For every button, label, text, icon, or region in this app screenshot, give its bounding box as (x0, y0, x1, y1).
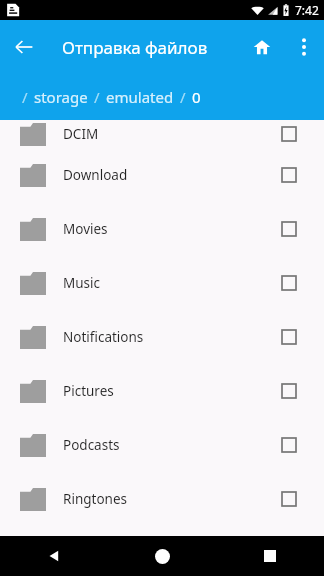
staticText: 7:42 (295, 2, 319, 18)
staticText: DCIM (63, 125, 99, 143)
staticText: Music (63, 274, 101, 292)
staticText: Pictures (63, 382, 114, 400)
staticText: Отправка файлов (62, 36, 208, 59)
button[interactable]: emulated (106, 87, 174, 107)
button[interactable]: Select folder (274, 322, 304, 352)
staticText: emulated (106, 87, 174, 107)
staticText: Notifications (63, 328, 144, 346)
button[interactable]: Home (108, 536, 216, 576)
button[interactable]: Back (0, 23, 48, 71)
staticText: 0 (192, 87, 201, 107)
button[interactable]: Ringtones (0, 472, 324, 526)
button[interactable]: Notifications (0, 310, 324, 364)
staticText: / (94, 87, 100, 107)
button[interactable]: Music (0, 256, 324, 310)
button[interactable]: Pictures (0, 364, 324, 418)
button[interactable]: DCIM (0, 120, 324, 148)
button[interactable]: Recent apps (216, 536, 324, 576)
staticText: Download (63, 166, 128, 184)
staticText: / (22, 87, 28, 107)
button[interactable]: Back (0, 536, 108, 576)
button[interactable]: 0 (192, 87, 201, 107)
button[interactable]: Select folder (274, 160, 304, 190)
staticText: Ringtones (63, 490, 127, 508)
staticText: Movies (63, 220, 108, 238)
button[interactable]: Select folder (274, 214, 304, 244)
button[interactable]: Download (0, 148, 324, 202)
button[interactable]: Home (240, 25, 284, 69)
staticText: / (180, 87, 186, 107)
button[interactable]: Podcasts (0, 418, 324, 472)
button[interactable]: Select folder (274, 484, 304, 514)
button[interactable]: Movies (0, 202, 324, 256)
button[interactable]: Select folder (274, 430, 304, 460)
staticText: storage (34, 87, 88, 107)
staticText: Podcasts (63, 436, 120, 454)
button[interactable]: storage (34, 87, 88, 107)
button[interactable]: More options (284, 27, 324, 67)
button[interactable]: Select folder (274, 120, 304, 148)
button[interactable]: Select folder (274, 376, 304, 406)
button[interactable]: Select folder (274, 268, 304, 298)
